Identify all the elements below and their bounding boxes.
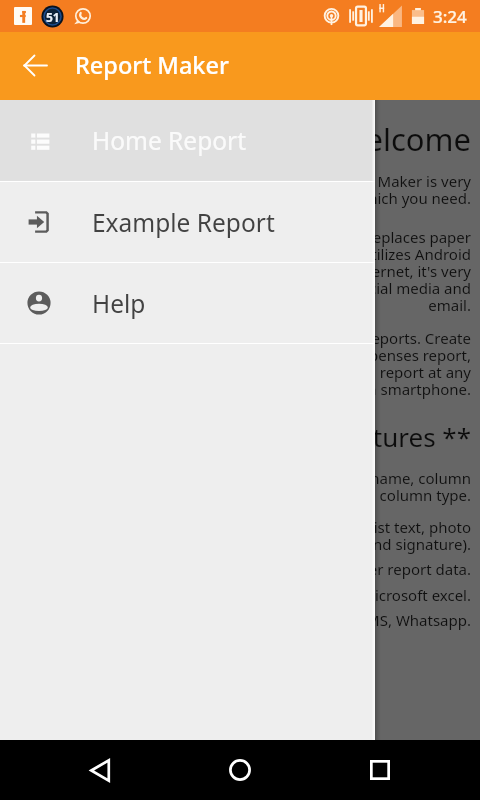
staticText: ** Features **	[0, 419, 471, 454]
staticText: Report Maker is very	[0, 171, 471, 191]
staticText: name, column type.	[0, 485, 471, 505]
staticText: time from smartphone.	[0, 379, 471, 399]
staticText: Report Maker	[75, 49, 229, 81]
staticText: Input and filter report data.	[0, 559, 471, 579]
staticText: and internet, it's very	[0, 261, 471, 281]
button[interactable]: Back	[11, 41, 59, 89]
staticText: Create report name, column	[0, 468, 471, 488]
staticText: Welcome	[0, 118, 471, 160]
staticText: report. It utilizes Android	[0, 244, 471, 264]
button[interactable]: Recent apps	[356, 746, 404, 794]
button[interactable]: Home	[216, 746, 264, 794]
staticText: Share via SMS, Whatsapp.	[0, 610, 471, 630]
staticText: 51	[46, 9, 60, 25]
button[interactable]: Example Report	[0, 182, 375, 262]
staticText: email.	[0, 295, 471, 315]
staticText: easy via social media and	[0, 278, 471, 298]
staticText: Create daily reports. Create	[0, 328, 471, 348]
button[interactable]: Help	[0, 263, 375, 343]
staticText: your own expenses report,	[0, 345, 471, 365]
staticText: Column type list text, photo	[0, 517, 471, 537]
button[interactable]: Back	[76, 746, 124, 794]
button[interactable]: Home Report	[0, 100, 375, 181]
staticText: Example Report	[92, 206, 275, 239]
staticText: make your bill report at any	[0, 362, 471, 382]
staticText: Help	[92, 287, 146, 320]
staticText: 3:24	[433, 5, 467, 28]
staticText: number (and signature).	[0, 534, 471, 554]
staticText: simple app which you need.	[0, 188, 471, 208]
staticText: This app replaces paper	[0, 227, 471, 247]
staticText: Export to microsoft excel.	[0, 585, 471, 605]
staticText: Home Report	[92, 124, 246, 157]
